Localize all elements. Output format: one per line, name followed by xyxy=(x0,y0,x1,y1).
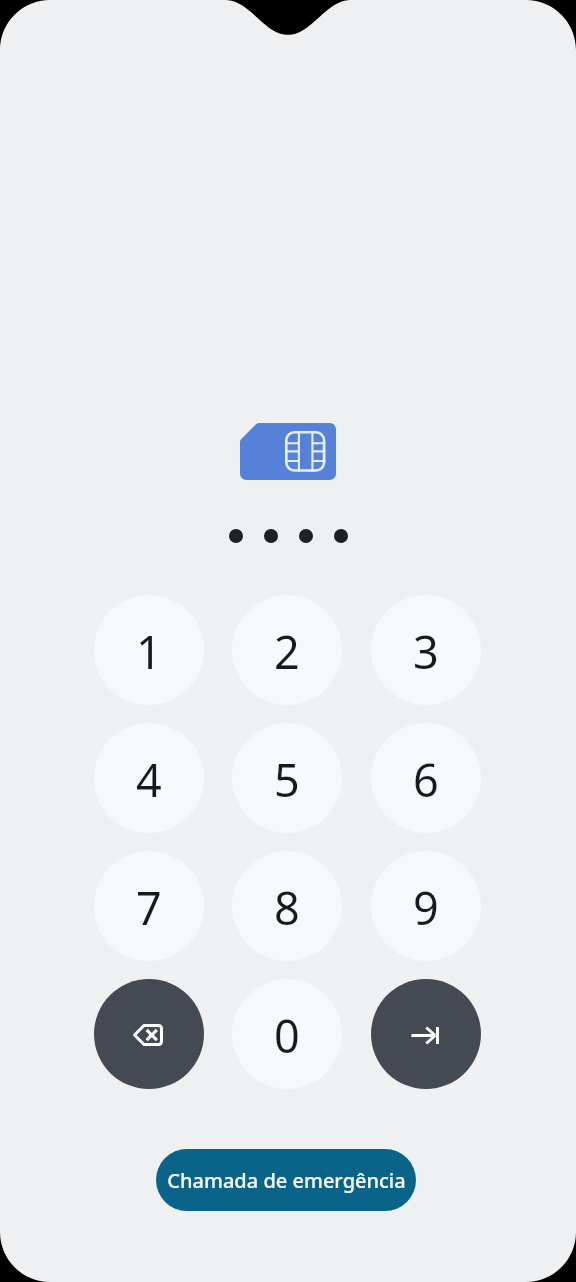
button[interactable]: 3 xyxy=(371,595,481,705)
staticText: 1 xyxy=(136,621,162,682)
button[interactable]: 0 xyxy=(232,979,342,1089)
staticText: 4 xyxy=(136,749,162,810)
staticText: 5 xyxy=(274,749,300,810)
staticText: 9 xyxy=(413,877,439,938)
button[interactable]: 1 xyxy=(94,595,204,705)
staticText: 0 xyxy=(274,1005,300,1066)
button[interactable]: 4 xyxy=(94,723,204,833)
button[interactable]: 7 xyxy=(94,851,204,961)
staticText: 6 xyxy=(413,749,439,810)
button[interactable]: Backspace xyxy=(94,979,204,1089)
button[interactable]: 9 xyxy=(371,851,481,961)
staticText: 2 xyxy=(274,621,300,682)
staticText: 3 xyxy=(413,621,439,682)
staticText: 8 xyxy=(274,877,300,938)
staticText: Chamada de emergência xyxy=(167,1167,406,1194)
button[interactable]: 6 xyxy=(371,723,481,833)
button[interactable]: 5 xyxy=(232,723,342,833)
button[interactable]: 8 xyxy=(232,851,342,961)
button[interactable]: Enter xyxy=(371,979,481,1089)
staticText: 7 xyxy=(136,877,162,938)
button[interactable]: Chamada de emergência xyxy=(156,1149,416,1211)
button[interactable]: 2 xyxy=(232,595,342,705)
